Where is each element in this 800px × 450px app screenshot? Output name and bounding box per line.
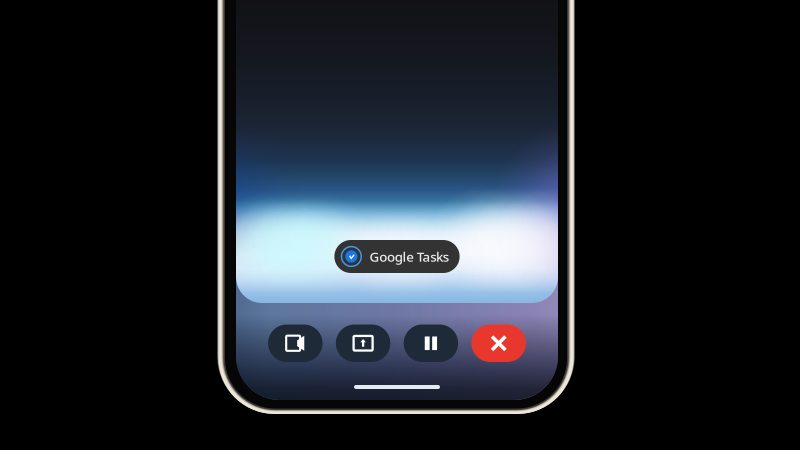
button[interactable]: Pause (404, 324, 458, 362)
button[interactable]: Google Tasks (334, 240, 460, 273)
button[interactable]: Share screen (336, 324, 390, 362)
button[interactable]: End call (471, 324, 526, 362)
button[interactable]: Camera (268, 324, 323, 362)
staticText: Google Tasks (369, 248, 449, 265)
